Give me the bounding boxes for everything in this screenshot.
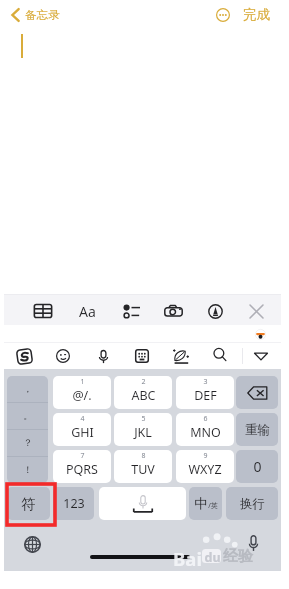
staticText: DEF — [194, 387, 217, 404]
staticText: 备忘录 — [25, 8, 60, 22]
button[interactable]: ？ — [7, 430, 48, 456]
staticText: ！ — [23, 464, 33, 476]
staticText: 0 — [253, 457, 262, 476]
staticText: TUV — [131, 461, 155, 478]
button[interactable]: 123 — [53, 487, 94, 520]
staticText: 123 — [63, 495, 85, 512]
button[interactable]: 4 — [53, 413, 111, 446]
staticText: 4 — [80, 414, 85, 424]
button[interactable]: Switch keyboard — [24, 536, 41, 553]
button[interactable]: 2 — [114, 376, 172, 409]
button[interactable]: ！ — [7, 457, 48, 483]
button[interactable]: Aa — [75, 299, 99, 323]
button[interactable]: Sogou input method — [12, 344, 36, 368]
button[interactable]: 0 — [236, 450, 278, 483]
staticText: @/. — [72, 387, 92, 404]
staticText: 2 — [141, 377, 146, 387]
staticText: 8 — [141, 451, 146, 461]
button[interactable]: Collapse keyboard — [249, 344, 273, 368]
button[interactable]: Insert table — [31, 299, 55, 323]
staticText: 5 — [141, 414, 146, 424]
button[interactable]: 9 — [176, 450, 234, 483]
button[interactable]: 换行 — [226, 487, 278, 520]
staticText: Bai — [173, 546, 202, 571]
button[interactable]: Emoji — [51, 344, 75, 368]
button[interactable]: Handwriting — [169, 344, 193, 368]
button[interactable]: 5 — [114, 413, 172, 446]
staticText: 。 — [23, 410, 33, 422]
staticText: 换行 — [240, 496, 265, 512]
staticText: GHI — [71, 424, 94, 441]
button[interactable]: 7 — [53, 450, 111, 483]
staticText: ABC — [131, 387, 156, 404]
button[interactable]: 3 — [176, 376, 234, 409]
button[interactable]: Space — [99, 487, 186, 520]
button[interactable]: Search — [208, 343, 232, 367]
button[interactable]: 1 — [53, 376, 111, 409]
button[interactable]: Voice input — [91, 344, 115, 368]
button[interactable]: 6 — [176, 413, 234, 446]
button[interactable]: Voice input — [246, 534, 261, 552]
button[interactable]: Backspace — [236, 376, 278, 409]
button[interactable]: 中 — [189, 487, 222, 520]
button[interactable]: More options — [216, 8, 230, 22]
staticText: MNO — [190, 424, 221, 441]
button[interactable]: Camera — [161, 299, 185, 323]
button[interactable]: 完成 — [240, 4, 273, 25]
staticText: 7 — [80, 451, 85, 461]
button[interactable]: 重输 — [236, 413, 278, 446]
button[interactable]: Close keyboard — [244, 299, 268, 323]
button[interactable]: Keyboard — [130, 344, 154, 368]
button[interactable]: 8 — [114, 450, 172, 483]
button[interactable]: Checklist — [119, 299, 143, 323]
staticText: ？ — [23, 437, 33, 449]
staticText: 1 — [80, 377, 85, 387]
staticText: 经验 — [223, 547, 253, 566]
button[interactable]: 符 — [7, 487, 50, 520]
staticText: /英 — [208, 501, 218, 511]
staticText: 中 — [194, 495, 208, 512]
staticText: ， — [23, 383, 33, 395]
staticText: 6 — [203, 414, 208, 424]
staticText: JKL — [134, 424, 152, 441]
staticText: 完成 — [243, 6, 270, 23]
staticText: PQRS — [66, 461, 98, 478]
staticText: du — [204, 549, 221, 566]
staticText: 3 — [203, 377, 208, 387]
staticText: 符 — [21, 495, 36, 513]
staticText: WXYZ — [188, 461, 222, 478]
staticText: 重输 — [245, 422, 270, 438]
button[interactable]: Markup — [203, 299, 227, 323]
staticText: 9 — [203, 451, 208, 461]
button[interactable]: 备忘录 — [11, 4, 60, 25]
staticText: Aa — [79, 302, 96, 321]
button[interactable]: ， — [7, 376, 48, 402]
